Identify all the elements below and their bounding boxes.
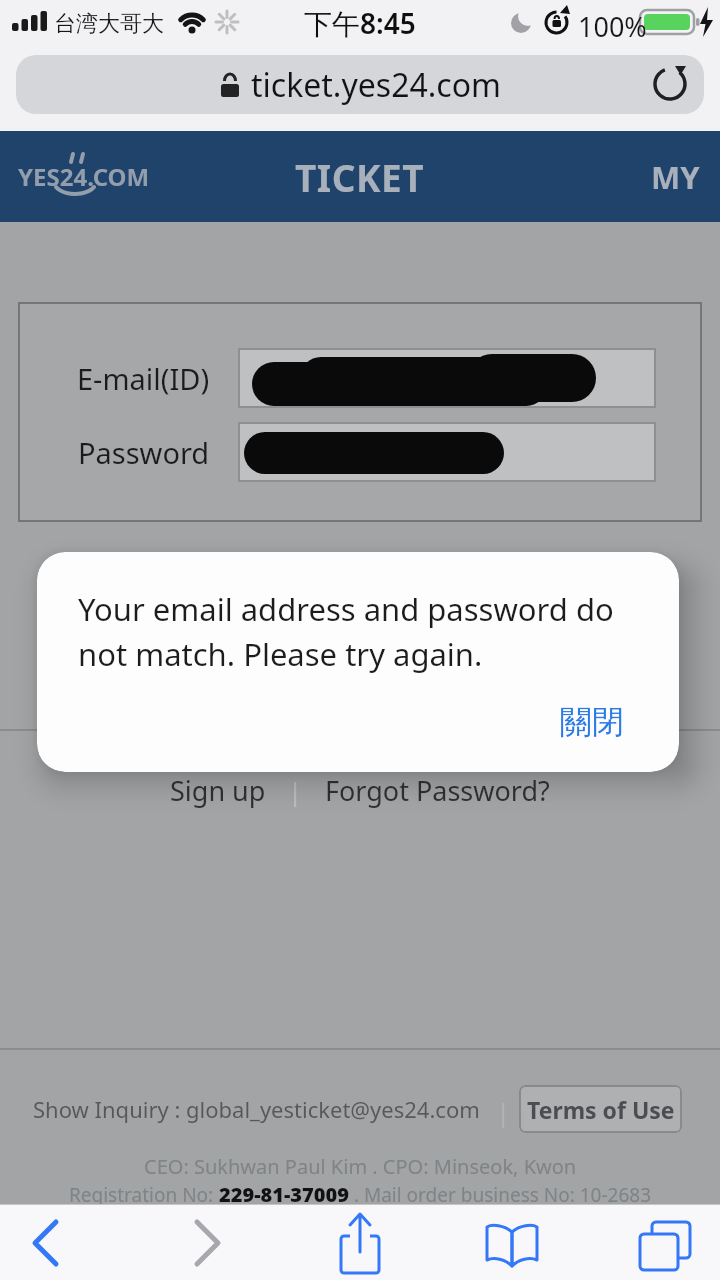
staticText: ticket.yes24.com [251, 63, 501, 107]
button[interactable] [238, 348, 656, 408]
staticText: Password [78, 433, 210, 472]
staticText: Registration No: [69, 1182, 219, 1208]
button[interactable] [238, 422, 656, 482]
staticText: 台湾大哥大 [54, 10, 164, 38]
button[interactable] [650, 64, 690, 104]
staticText: Terms of Use [527, 1094, 675, 1125]
button[interactable] [634, 1212, 698, 1272]
button[interactable] [180, 1212, 240, 1272]
button[interactable] [482, 1212, 542, 1272]
button[interactable] [20, 1212, 80, 1272]
staticText: 關閉 [560, 702, 624, 742]
staticText: | [496, 1094, 511, 1129]
staticText: . Mail order business No: 10-2683 [349, 1182, 652, 1208]
button[interactable]: Forgot Password? [325, 772, 550, 809]
staticText: YES24.COM [18, 160, 150, 193]
staticText: 100% [578, 8, 647, 45]
button[interactable]: Terms of Use [519, 1085, 682, 1133]
staticText: | [288, 773, 303, 808]
button[interactable] [330, 1212, 390, 1272]
button[interactable]: Sign up [170, 772, 266, 809]
button[interactable]: ticket.yes24.com [16, 55, 704, 114]
button[interactable]: MY [640, 131, 710, 222]
staticText: Show Inquiry : global_yesticket@yes24.co… [33, 1094, 480, 1124]
staticText: Forgot Password? [325, 772, 550, 809]
staticText: 下午8:45 [304, 4, 416, 42]
staticText: Your email address and password do not m… [78, 588, 614, 675]
staticText: E-mail(ID) [77, 359, 210, 398]
staticText: 229-81-37009 [219, 1181, 349, 1208]
staticText: CEO: Sukhwan Paul Kim . CPO: Minseok, Kw… [144, 1153, 577, 1180]
staticText: Sign up [170, 772, 266, 809]
button[interactable]: 關閉 [537, 694, 647, 750]
staticText: MY [651, 156, 700, 198]
staticText: TICKET [295, 152, 425, 202]
button[interactable]: YES24.COM [18, 131, 218, 222]
